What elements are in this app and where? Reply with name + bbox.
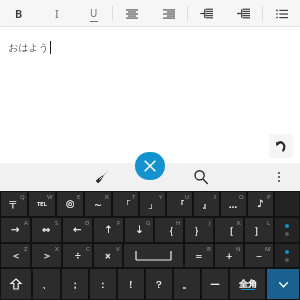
- staticText: B: [15, 6, 23, 21]
- button[interactable]: －: [245, 244, 273, 267]
- staticText: 全角: [239, 278, 257, 289]
- button[interactable]: …: [221, 192, 246, 216]
- staticText: ↑: [104, 224, 113, 236]
- button[interactable]: Underline: [75, 0, 112, 27]
- staticText: F: [117, 219, 121, 227]
- staticText: R: [105, 193, 109, 201]
- button[interactable]: Italic: [38, 0, 75, 27]
- staticText: K: [237, 219, 241, 227]
- button[interactable]: ↑: [94, 218, 123, 242]
- button[interactable]: ÷: [63, 244, 92, 267]
- button[interactable]: ＋: [215, 244, 243, 267]
- button[interactable]: Close: [135, 152, 165, 180]
- button[interactable]: 全角: [230, 269, 265, 299]
- staticText: ］: [254, 224, 264, 237]
- staticText: →: [11, 224, 20, 236]
- staticText: ＝: [194, 249, 204, 262]
- button[interactable]: More options: [259, 163, 298, 191]
- button[interactable]: [275, 218, 299, 242]
- staticText: T: [132, 193, 136, 201]
- button[interactable]: [124, 244, 183, 267]
- button[interactable]: ＜: [1, 244, 30, 267]
- button[interactable]: 〒: [1, 192, 27, 216]
- button[interactable]: Bold: [0, 0, 38, 27]
- staticText: E: [77, 193, 81, 201]
- staticText: 。: [182, 278, 192, 291]
- staticText: 」: [148, 198, 158, 211]
- staticText: I: [214, 193, 217, 201]
- staticText: ？: [154, 278, 164, 291]
- staticText: Y: [159, 193, 163, 201]
- button[interactable]: ？: [146, 269, 172, 299]
- staticText: TEL: [37, 200, 47, 208]
- button[interactable]: ×: [94, 244, 122, 267]
- button[interactable]: 」: [140, 192, 165, 216]
- staticText: ⇔: [42, 224, 51, 236]
- button[interactable]: Bulleted list: [263, 0, 300, 27]
- button[interactable]: ［: [215, 218, 243, 242]
- button[interactable]: ：: [90, 269, 116, 299]
- button[interactable]: Shift: [1, 269, 31, 299]
- button[interactable]: 『: [167, 192, 192, 216]
- button[interactable]: ！: [118, 269, 144, 299]
- staticText: V: [116, 245, 120, 253]
- button[interactable]: ］: [245, 218, 273, 242]
- staticText: X: [55, 245, 59, 253]
- staticText: H: [176, 219, 181, 227]
- button[interactable]: ；: [62, 269, 88, 299]
- staticText: Q: [20, 193, 25, 201]
- staticText: ×: [105, 249, 111, 263]
- button[interactable]: ー: [202, 269, 228, 299]
- staticText: G: [146, 219, 151, 227]
- staticText: ；: [70, 278, 80, 291]
- button[interactable]: ＝: [185, 244, 213, 267]
- button[interactable]: Align right: [150, 0, 187, 27]
- staticText: ＞: [42, 249, 52, 262]
- button[interactable]: Decrease indent: [225, 0, 262, 27]
- staticText: M: [265, 245, 271, 253]
- staticText: －: [254, 249, 264, 262]
- button[interactable]: ↓: [125, 218, 153, 242]
- button[interactable]: ＞: [32, 244, 61, 267]
- staticText: L: [267, 219, 271, 227]
- button[interactable]: ～: [85, 192, 111, 216]
- button[interactable]: →: [1, 218, 30, 242]
- button[interactable]: [275, 244, 299, 267]
- button[interactable]: Align center: [113, 0, 150, 27]
- button[interactable]: ←: [63, 218, 92, 242]
- staticText: P: [267, 193, 271, 201]
- button[interactable]: ⇔: [32, 218, 61, 242]
- button[interactable]: 、: [33, 269, 60, 299]
- staticText: 〒: [9, 198, 19, 211]
- button[interactable]: Enter: [267, 269, 299, 299]
- staticText: 『: [175, 198, 185, 211]
- staticText: C: [86, 245, 90, 253]
- staticText: おはよう: [8, 41, 49, 54]
- button[interactable]: ◎: [57, 192, 83, 216]
- staticText: ＜: [11, 249, 21, 262]
- button[interactable]: ♪: [248, 192, 273, 216]
- staticText: ｛: [164, 224, 174, 237]
- button[interactable]: 。: [174, 269, 200, 299]
- staticText: ↓: [135, 224, 144, 236]
- staticText: B: [207, 245, 211, 253]
- staticText: D: [85, 219, 90, 227]
- staticText: ～: [93, 198, 103, 211]
- button[interactable]: ｝: [185, 218, 213, 242]
- staticText: O: [239, 193, 244, 201]
- button[interactable]: Undo: [269, 134, 293, 158]
- staticText: ［: [224, 224, 234, 237]
- staticText: Z: [24, 245, 28, 253]
- button[interactable]: Increase indent: [188, 0, 225, 27]
- staticText: N: [236, 245, 241, 253]
- button[interactable]: Pen: [77, 163, 127, 191]
- button[interactable]: 』: [194, 192, 219, 216]
- staticText: W: [47, 193, 53, 201]
- button[interactable]: Search: [176, 163, 225, 191]
- button[interactable]: TEL: [29, 192, 55, 216]
- button[interactable]: 「: [113, 192, 138, 216]
- staticText: A: [24, 219, 28, 227]
- staticText: ←: [73, 224, 82, 236]
- button[interactable]: ｛: [155, 218, 183, 242]
